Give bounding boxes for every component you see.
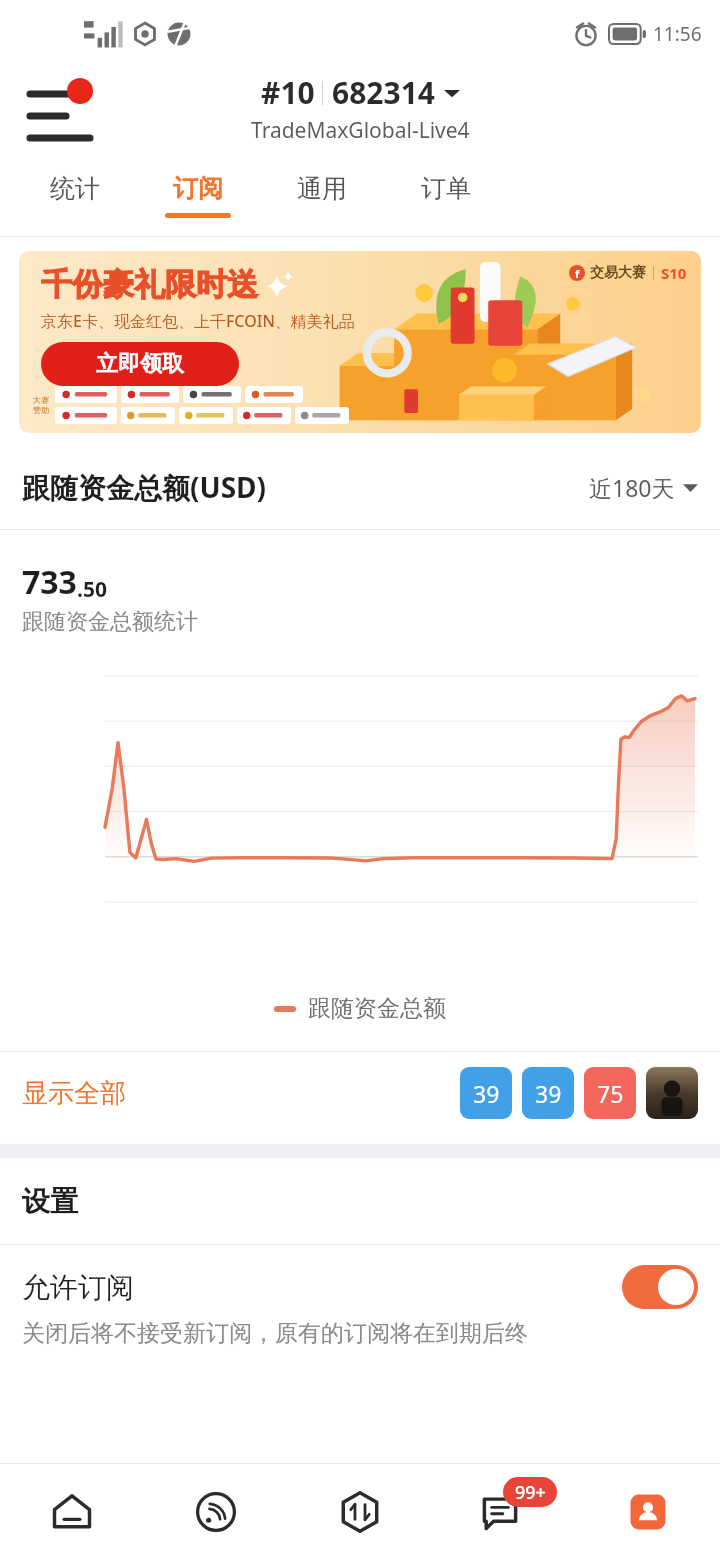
staticText: 京东E卡、现金红包、上千FCOIN、精美礼品 [41, 310, 355, 332]
staticText: 订阅 [173, 173, 223, 204]
staticText: 交易大赛 [590, 264, 646, 282]
staticText: 39 [535, 1078, 562, 1109]
button[interactable]: 允许订阅 [0, 1245, 720, 1358]
staticText: 千份豪礼限时送 [41, 265, 258, 304]
staticText: 通用 [297, 173, 347, 204]
button[interactable]: 75 [584, 1067, 636, 1119]
staticText: 99+ [515, 1480, 546, 1505]
button[interactable]: #10 [251, 72, 470, 145]
button[interactable]: Menu [22, 74, 84, 136]
staticText: 682314 [332, 72, 435, 113]
button[interactable]: Allow subscriptions toggle [622, 1265, 698, 1309]
staticText: 39 [473, 1078, 500, 1109]
staticText: 显示全部 [22, 1077, 126, 1110]
staticText: 733 [22, 560, 77, 604]
staticText: 设置 [22, 1184, 78, 1219]
staticText: 订单 [421, 173, 471, 204]
button[interactable]: 近180天 [589, 472, 698, 503]
button[interactable]: Signals [144, 1464, 288, 1560]
staticText: 跟随资金总额 [308, 994, 446, 1023]
button[interactable]: 39 [460, 1067, 512, 1119]
staticText: 11:56 [653, 21, 702, 47]
button[interactable]: 订单 [384, 173, 508, 213]
staticText: 大赛 [33, 395, 49, 405]
staticText: 75 [597, 1078, 624, 1109]
staticText: TradeMaxGlobal-Live4 [251, 116, 470, 145]
button[interactable]: 39 [522, 1067, 574, 1119]
staticText: 关闭后将不接受新订阅，原有的订阅将在到期后终 [22, 1319, 528, 1348]
button[interactable]: 通用 [260, 173, 384, 213]
staticText: .50 [77, 575, 107, 604]
button[interactable]: Home [0, 1464, 144, 1560]
button[interactable]: 千份豪礼限时送 [19, 251, 701, 433]
button[interactable]: Profile [576, 1464, 720, 1560]
button[interactable]: Messages [432, 1464, 576, 1560]
button[interactable]: 立即领取 [41, 342, 239, 386]
staticText: f [575, 266, 580, 281]
staticText: 统计 [50, 173, 100, 204]
staticText: 近180天 [589, 472, 675, 503]
staticText: 立即领取 [96, 350, 184, 378]
button[interactable]: Trade [288, 1464, 432, 1560]
button[interactable]: 显示全部 [0, 1052, 720, 1134]
staticText: S10 [661, 263, 687, 283]
button[interactable]: 统计 [14, 173, 136, 213]
staticText: 允许订阅 [22, 1270, 134, 1305]
staticText: #10 [261, 72, 315, 113]
staticText: 赞助 [33, 405, 49, 415]
staticText: 跟随资金总额统计 [22, 608, 198, 636]
button[interactable]: 订阅 [136, 173, 260, 218]
staticText: 跟随资金总额(USD) [22, 468, 267, 506]
